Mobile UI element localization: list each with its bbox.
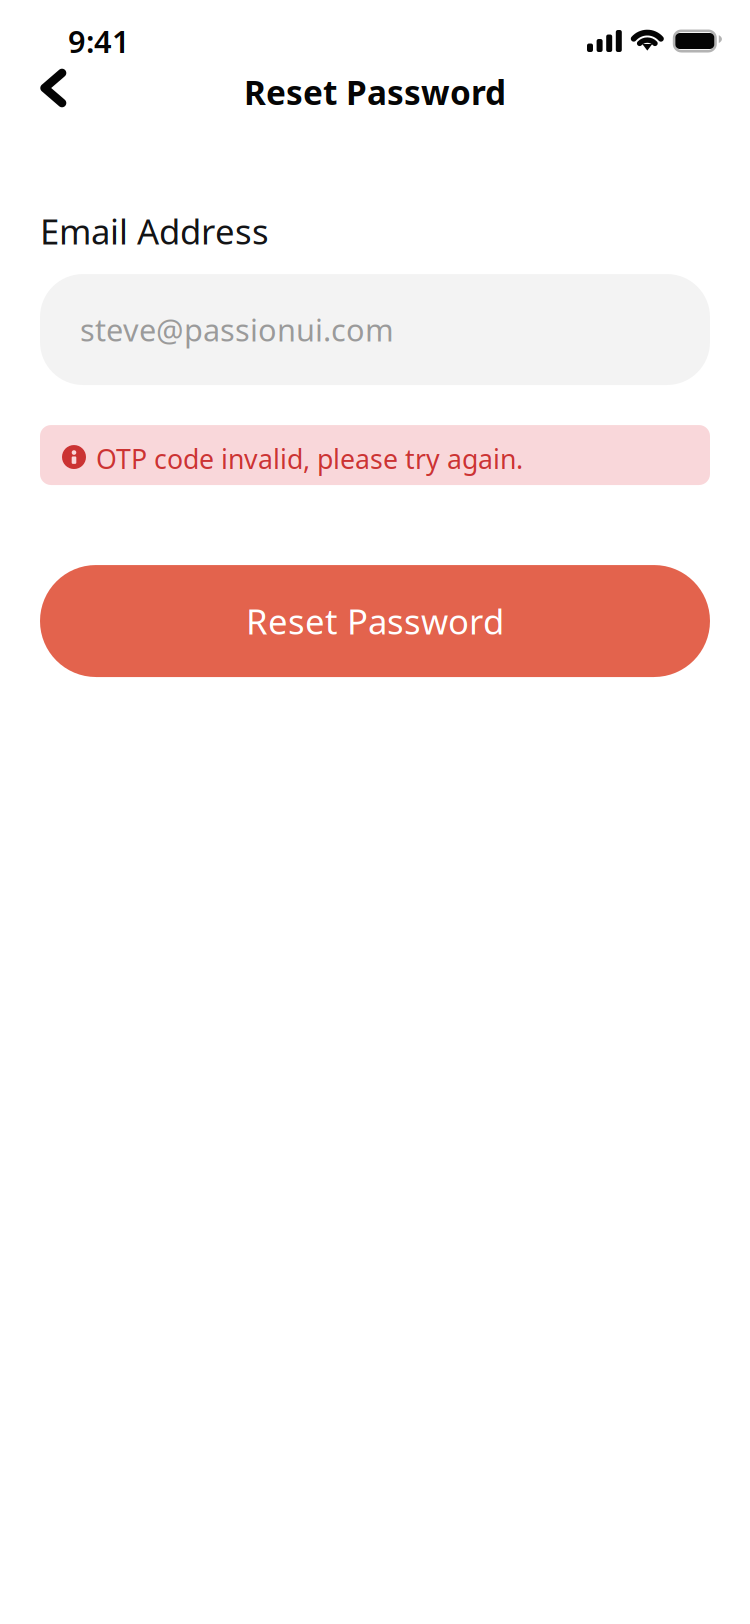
staticText: OTP code invalid, please try again.	[96, 441, 523, 476]
staticText: Reset Password	[246, 598, 504, 644]
staticText: Email Address	[40, 208, 269, 254]
staticText: steve@passionui.com	[80, 309, 394, 350]
button[interactable]: steve@passionui.com	[40, 274, 710, 385]
button[interactable]: Back	[0, 70, 106, 114]
button[interactable]: Reset Password	[40, 565, 710, 677]
staticText: 9:41	[68, 21, 130, 61]
staticText: Reset Password	[244, 70, 506, 114]
